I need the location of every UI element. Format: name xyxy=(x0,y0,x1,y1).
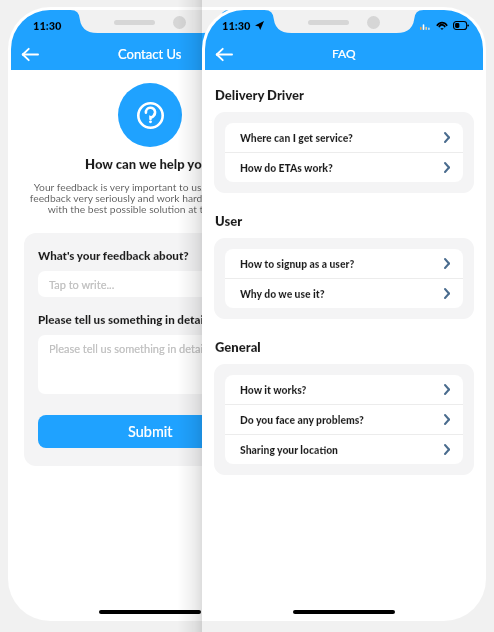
staticText: Do you face any problems? xyxy=(240,414,444,426)
staticText: What's your feedback about? xyxy=(38,249,189,263)
staticText: How it works? xyxy=(240,384,444,396)
staticText: Where can I get service? xyxy=(240,132,444,144)
staticText: Please tell us something in detail xyxy=(49,342,206,355)
button[interactable]: How to signup as a user? xyxy=(225,249,463,278)
staticText: How do ETAs work? xyxy=(240,162,444,174)
staticText: How can we help you? xyxy=(11,156,289,172)
button[interactable]: How it works? xyxy=(225,375,463,404)
staticText: User xyxy=(215,213,243,229)
staticText: Your feedback is very important to us. W… xyxy=(23,181,277,216)
staticText: General xyxy=(215,339,261,355)
button[interactable]: Back xyxy=(211,41,237,67)
button[interactable]: Please tell us something in detail xyxy=(38,335,262,394)
button[interactable]: Submit xyxy=(38,415,262,448)
staticText: Delivery Driver xyxy=(215,87,305,103)
staticText: Please tell us something in detail xyxy=(38,313,207,327)
staticText: 11:30 xyxy=(222,19,251,32)
button[interactable]: Where can I get service? xyxy=(225,123,463,152)
staticText: Why do we use it? xyxy=(240,288,444,300)
button[interactable]: Tap to write... xyxy=(38,271,262,297)
staticText: Contact Us xyxy=(118,46,182,62)
staticText: Tap to write... xyxy=(49,278,115,291)
staticText: 11:30 xyxy=(33,19,62,32)
button[interactable]: Why do we use it? xyxy=(225,279,463,308)
button[interactable]: Back xyxy=(17,41,43,67)
staticText: Submit xyxy=(128,423,173,440)
button[interactable]: How do ETAs work? xyxy=(225,153,463,182)
staticText: FAQ xyxy=(332,46,356,60)
staticText: How to signup as a user? xyxy=(240,258,444,270)
staticText: Sharing your location xyxy=(240,444,444,456)
button[interactable]: Sharing your location xyxy=(225,435,463,464)
button[interactable]: Do you face any problems? xyxy=(225,405,463,434)
